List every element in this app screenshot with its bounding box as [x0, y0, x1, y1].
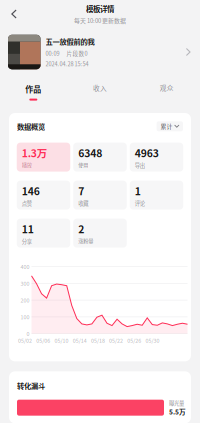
- staticText: 1.3万: [22, 145, 47, 160]
- staticText: 05/18: [91, 337, 105, 344]
- button[interactable]: 观众: [133, 76, 200, 105]
- staticText: 每天 10:00 更新数据: [74, 16, 126, 25]
- staticText: 点赞: [22, 199, 32, 207]
- staticText: 模板详情: [86, 3, 114, 14]
- staticText: 1: [135, 183, 141, 198]
- button[interactable]: 收入: [67, 76, 133, 105]
- button[interactable]: 累计: [157, 121, 183, 131]
- staticText: 05/10: [54, 337, 68, 344]
- button[interactable]: 返回: [1, 2, 27, 26]
- staticText: 7: [78, 183, 84, 198]
- button[interactable]: 1: [130, 181, 183, 210]
- staticText: 4963: [135, 145, 159, 160]
- staticText: 收入: [93, 83, 107, 93]
- staticText: 数据概览: [17, 121, 45, 132]
- staticText: 片段数0: [66, 49, 87, 57]
- staticText: 作品: [25, 83, 41, 95]
- staticText: 05/22: [109, 337, 123, 344]
- staticText: 0: [26, 330, 29, 337]
- button[interactable]: 1.3万: [17, 143, 70, 172]
- staticText: 100: [20, 313, 29, 321]
- staticText: 收藏: [78, 199, 88, 207]
- staticText: 2: [78, 221, 84, 236]
- button[interactable]: 五一放假前的我: [0, 28, 200, 76]
- staticText: 播放: [22, 161, 32, 169]
- staticText: 05/14: [73, 337, 87, 344]
- staticText: 300: [20, 279, 29, 287]
- staticText: 11: [22, 221, 34, 236]
- staticText: 05/06: [36, 337, 50, 344]
- staticText: 6348: [78, 145, 102, 160]
- staticText: 转化漏斗: [17, 380, 45, 391]
- staticText: 使用: [78, 161, 88, 169]
- button[interactable]: 6348: [73, 143, 127, 172]
- staticText: 5.5万: [169, 407, 186, 416]
- staticText: 累计: [161, 122, 173, 131]
- staticText: 导出: [135, 161, 145, 169]
- staticText: 00:09: [45, 49, 59, 57]
- staticText: 400: [20, 263, 29, 270]
- staticText: 05/26: [127, 337, 141, 344]
- staticText: 分享: [22, 237, 32, 245]
- staticText: 五一放假前的我: [45, 36, 94, 47]
- staticText: 05/02: [18, 337, 32, 344]
- staticText: 评论: [135, 199, 145, 207]
- staticText: 曝光量: [169, 399, 184, 407]
- button[interactable]: 4963: [130, 143, 183, 172]
- staticText: 05/30: [145, 337, 159, 344]
- staticText: 200: [20, 296, 29, 304]
- button[interactable]: 作品: [0, 76, 67, 105]
- button[interactable]: 146: [17, 181, 70, 210]
- staticText: 涨粉量: [78, 237, 93, 245]
- staticText: 146: [22, 183, 40, 198]
- button[interactable]: 7: [73, 181, 127, 210]
- staticText: 观众: [160, 83, 174, 93]
- button[interactable]: 11: [17, 219, 70, 248]
- button[interactable]: 2: [73, 219, 127, 248]
- staticText: 2024.04.28 15:54: [45, 60, 88, 68]
